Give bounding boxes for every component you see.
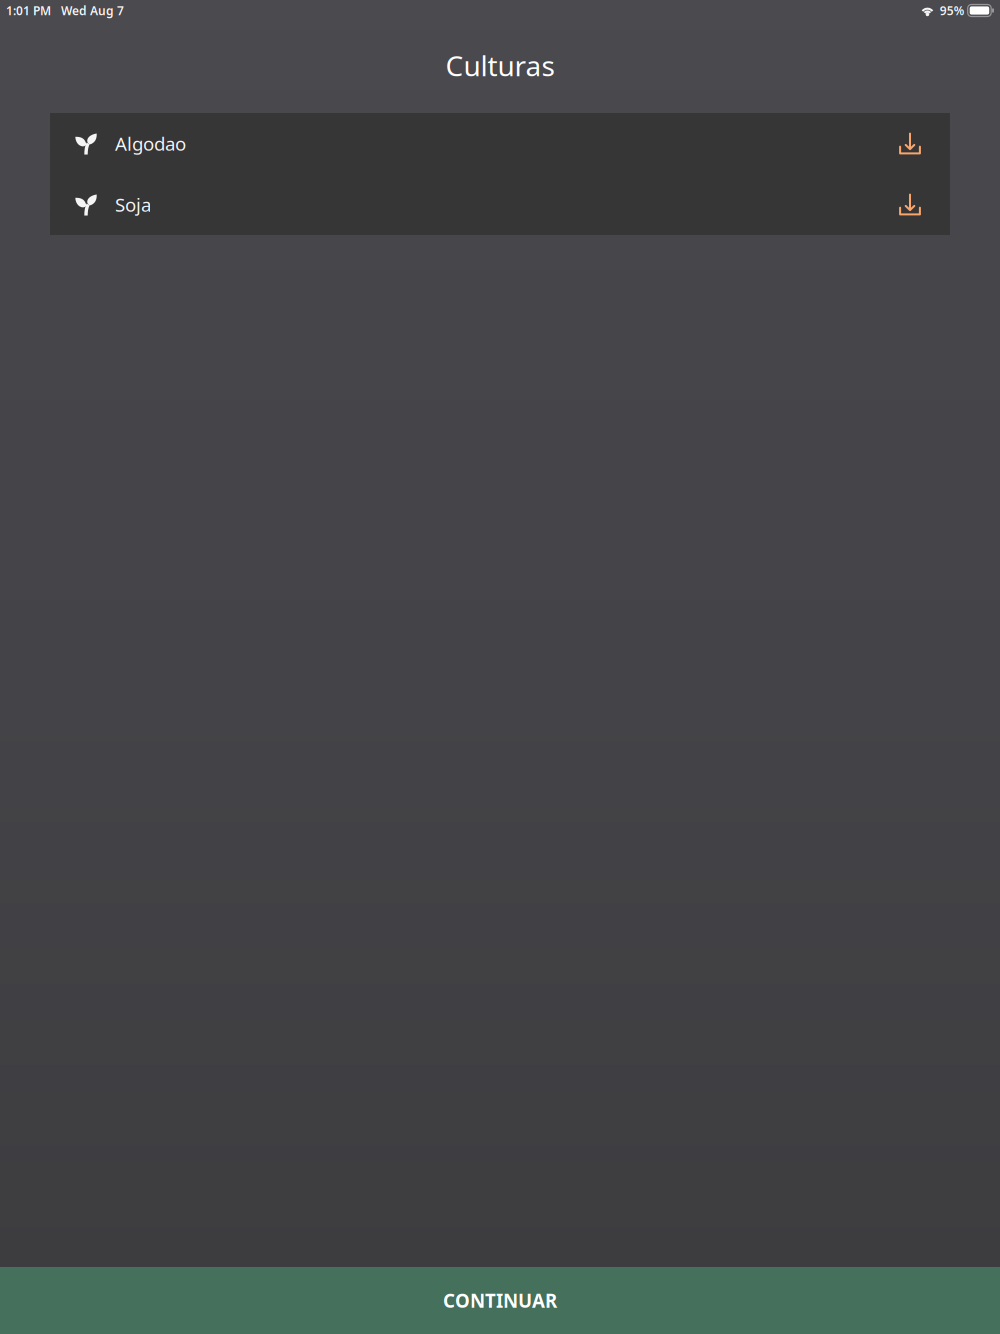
staticText: 95% xyxy=(940,2,965,18)
staticText: Algodao xyxy=(115,131,186,156)
staticText: 1:01 PM xyxy=(6,2,51,18)
button[interactable]: Baixar Algodao xyxy=(881,113,950,174)
button[interactable]: Baixar Soja xyxy=(881,174,950,235)
staticText: CONTINUAR xyxy=(443,1288,557,1313)
staticText: Wed Aug 7 xyxy=(61,2,124,18)
staticText: Soja xyxy=(115,192,151,217)
button[interactable]: Algodao xyxy=(50,113,950,174)
staticText: Culturas xyxy=(445,47,554,84)
button[interactable]: CONTINUAR xyxy=(0,1267,1000,1334)
button[interactable]: Soja xyxy=(50,174,950,235)
